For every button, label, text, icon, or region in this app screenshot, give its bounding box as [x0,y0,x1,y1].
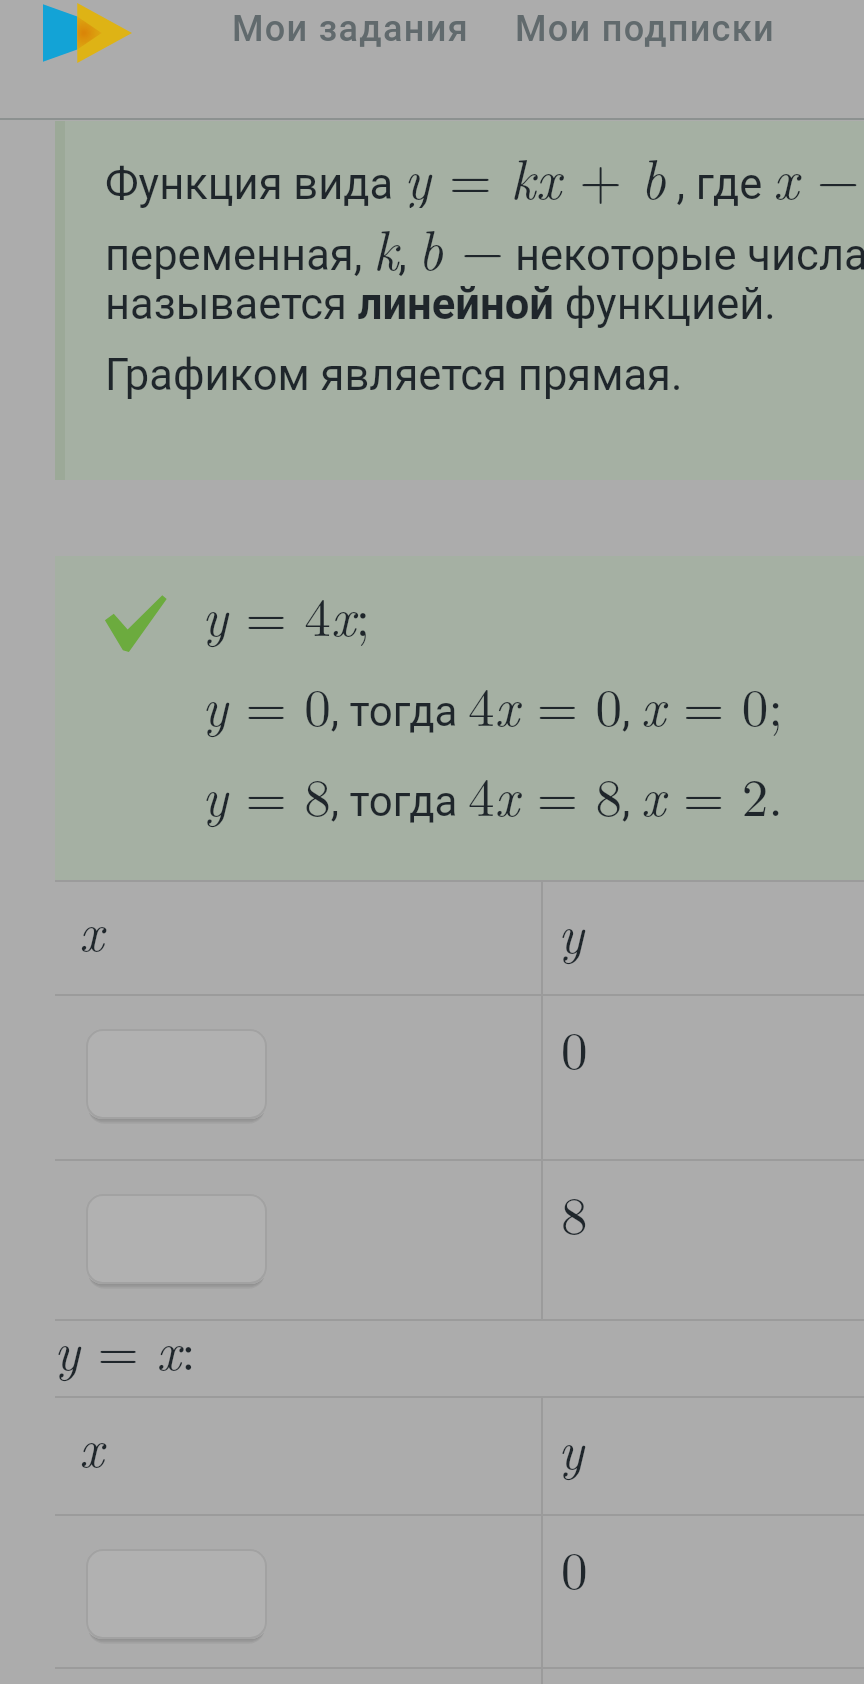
staticText: 0 [561,1529,588,1604]
staticText: y [558,1409,584,1484]
staticText: 0 [561,1009,588,1084]
staticText: Мои подписки [515,8,776,50]
button[interactable]: Поле ввода [86,1029,267,1119]
staticText: Мои задания [232,8,469,50]
staticText: y [558,893,584,968]
button[interactable]: Поле ввода [86,1549,267,1639]
staticText: y = 8, тогда 4x = 8, x = 2. [202,756,784,831]
staticText: y = 4x; [202,576,371,651]
button[interactable]: Мои задания [230,6,471,52]
staticText: Графиком является прямая. [105,350,683,401]
staticText: Функция вида y = kx + b , где x − [105,137,860,208]
button[interactable]: Поле ввода [86,1194,267,1284]
button[interactable]: Мои подписки [513,6,778,52]
button[interactable]: Логотип [43,3,132,63]
staticText: 8 [561,1174,588,1249]
staticText: x [79,891,104,966]
staticText: переменная, k, b − некоторые числа, [105,208,864,279]
staticText: y = 0, тогда 4x = 0, x = 0; [202,666,784,741]
staticText: называется линейной функцией. [105,279,776,330]
staticText: x [79,1407,104,1482]
staticText: y = x: [54,1310,196,1385]
